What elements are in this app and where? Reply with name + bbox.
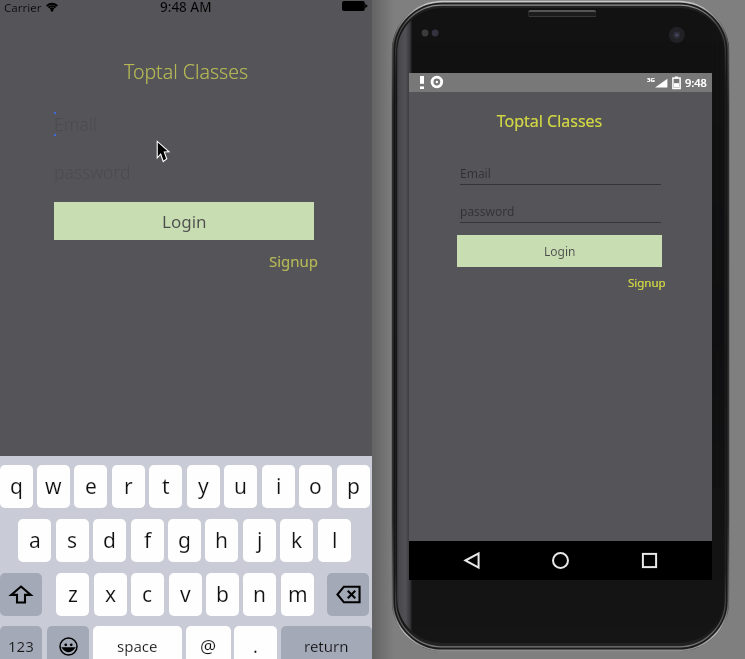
staticText: s — [67, 526, 78, 555]
button[interactable]: 123 — [0, 626, 42, 659]
staticText: w — [45, 472, 62, 501]
staticText: 123 — [8, 636, 34, 656]
button[interactable]: Back — [449, 541, 495, 580]
staticText: i — [276, 472, 282, 501]
button[interactable]: a — [18, 519, 51, 562]
staticText: x — [105, 580, 117, 609]
staticText: q — [10, 472, 23, 501]
staticText: j — [257, 526, 263, 555]
staticText: m — [288, 580, 308, 609]
button[interactable]: d — [93, 519, 126, 562]
staticText: Carrier — [4, 0, 42, 16]
staticText: f — [144, 526, 152, 555]
button[interactable]: h — [205, 519, 238, 562]
button[interactable]: Signup — [269, 249, 319, 271]
button[interactable]: z — [56, 573, 89, 616]
button[interactable]: Emoji keyboard — [47, 626, 89, 659]
button[interactable]: Email — [460, 165, 661, 185]
button[interactable]: g — [168, 519, 201, 562]
staticText: z — [68, 580, 78, 609]
button[interactable]: Recent apps — [626, 541, 672, 580]
button[interactable]: c — [131, 573, 164, 616]
button[interactable]: q — [0, 465, 33, 508]
button[interactable]: Login — [457, 235, 662, 267]
button[interactable]: y — [187, 465, 220, 508]
button[interactable]: u — [224, 465, 257, 508]
staticText: v — [180, 580, 191, 609]
button[interactable]: v — [169, 573, 202, 616]
staticText: k — [291, 526, 303, 555]
button[interactable]: r — [112, 465, 145, 508]
button[interactable]: i — [262, 465, 295, 508]
button[interactable]: @ — [186, 626, 231, 659]
button[interactable]: p — [337, 465, 370, 508]
button[interactable]: f — [131, 519, 164, 562]
staticText: Login — [162, 210, 207, 233]
button[interactable]: Home — [537, 541, 583, 580]
staticText: n — [253, 580, 266, 609]
staticText: e — [85, 472, 97, 501]
staticText: l — [332, 526, 338, 555]
button[interactable]: n — [243, 573, 276, 616]
button[interactable]: Shift — [0, 573, 42, 616]
staticText: u — [234, 472, 247, 501]
button[interactable]: s — [56, 519, 89, 562]
button[interactable]: return — [281, 626, 372, 659]
staticText: space — [117, 636, 158, 656]
staticText: a — [29, 526, 41, 555]
staticText: t — [162, 472, 170, 501]
staticText: c — [142, 580, 153, 609]
staticText: Login — [544, 243, 576, 259]
staticText: password — [460, 203, 515, 219]
button[interactable]: x — [94, 573, 127, 616]
staticText: d — [103, 526, 116, 555]
staticText: @ — [200, 634, 217, 659]
button[interactable]: Backspace — [327, 573, 369, 616]
staticText: r — [124, 472, 133, 501]
button[interactable]: password — [54, 158, 314, 188]
button[interactable]: Signup — [628, 273, 666, 291]
button[interactable]: Email — [54, 110, 314, 140]
staticText: p — [347, 472, 360, 501]
staticText: . — [253, 634, 258, 659]
button[interactable]: m — [281, 573, 314, 616]
button[interactable]: l — [318, 519, 351, 562]
staticText: 9:48 — [685, 75, 707, 90]
staticText: Email — [54, 112, 97, 136]
staticText: 9:48 AM — [160, 0, 212, 16]
staticText: b — [216, 580, 229, 609]
button[interactable]: t — [149, 465, 182, 508]
staticText: Signup — [269, 251, 319, 271]
button[interactable]: . — [234, 626, 277, 659]
staticText: 3G — [647, 76, 655, 84]
staticText: Toptal Classes — [398, 110, 701, 132]
button[interactable]: b — [206, 573, 239, 616]
staticText: Signup — [628, 275, 666, 291]
staticText: y — [198, 472, 209, 501]
staticText: Toptal Classes — [0, 58, 372, 85]
button[interactable]: password — [460, 203, 661, 223]
button[interactable]: o — [299, 465, 332, 508]
button[interactable]: k — [280, 519, 313, 562]
staticText: g — [178, 526, 191, 555]
button[interactable]: e — [74, 465, 107, 508]
staticText: o — [309, 472, 322, 501]
button[interactable]: space — [93, 626, 182, 659]
button[interactable]: j — [243, 519, 276, 562]
button[interactable]: Login — [54, 202, 314, 240]
staticText: Email — [460, 165, 491, 181]
staticText: h — [215, 526, 228, 555]
button[interactable]: w — [37, 465, 70, 508]
staticText: return — [304, 636, 349, 656]
